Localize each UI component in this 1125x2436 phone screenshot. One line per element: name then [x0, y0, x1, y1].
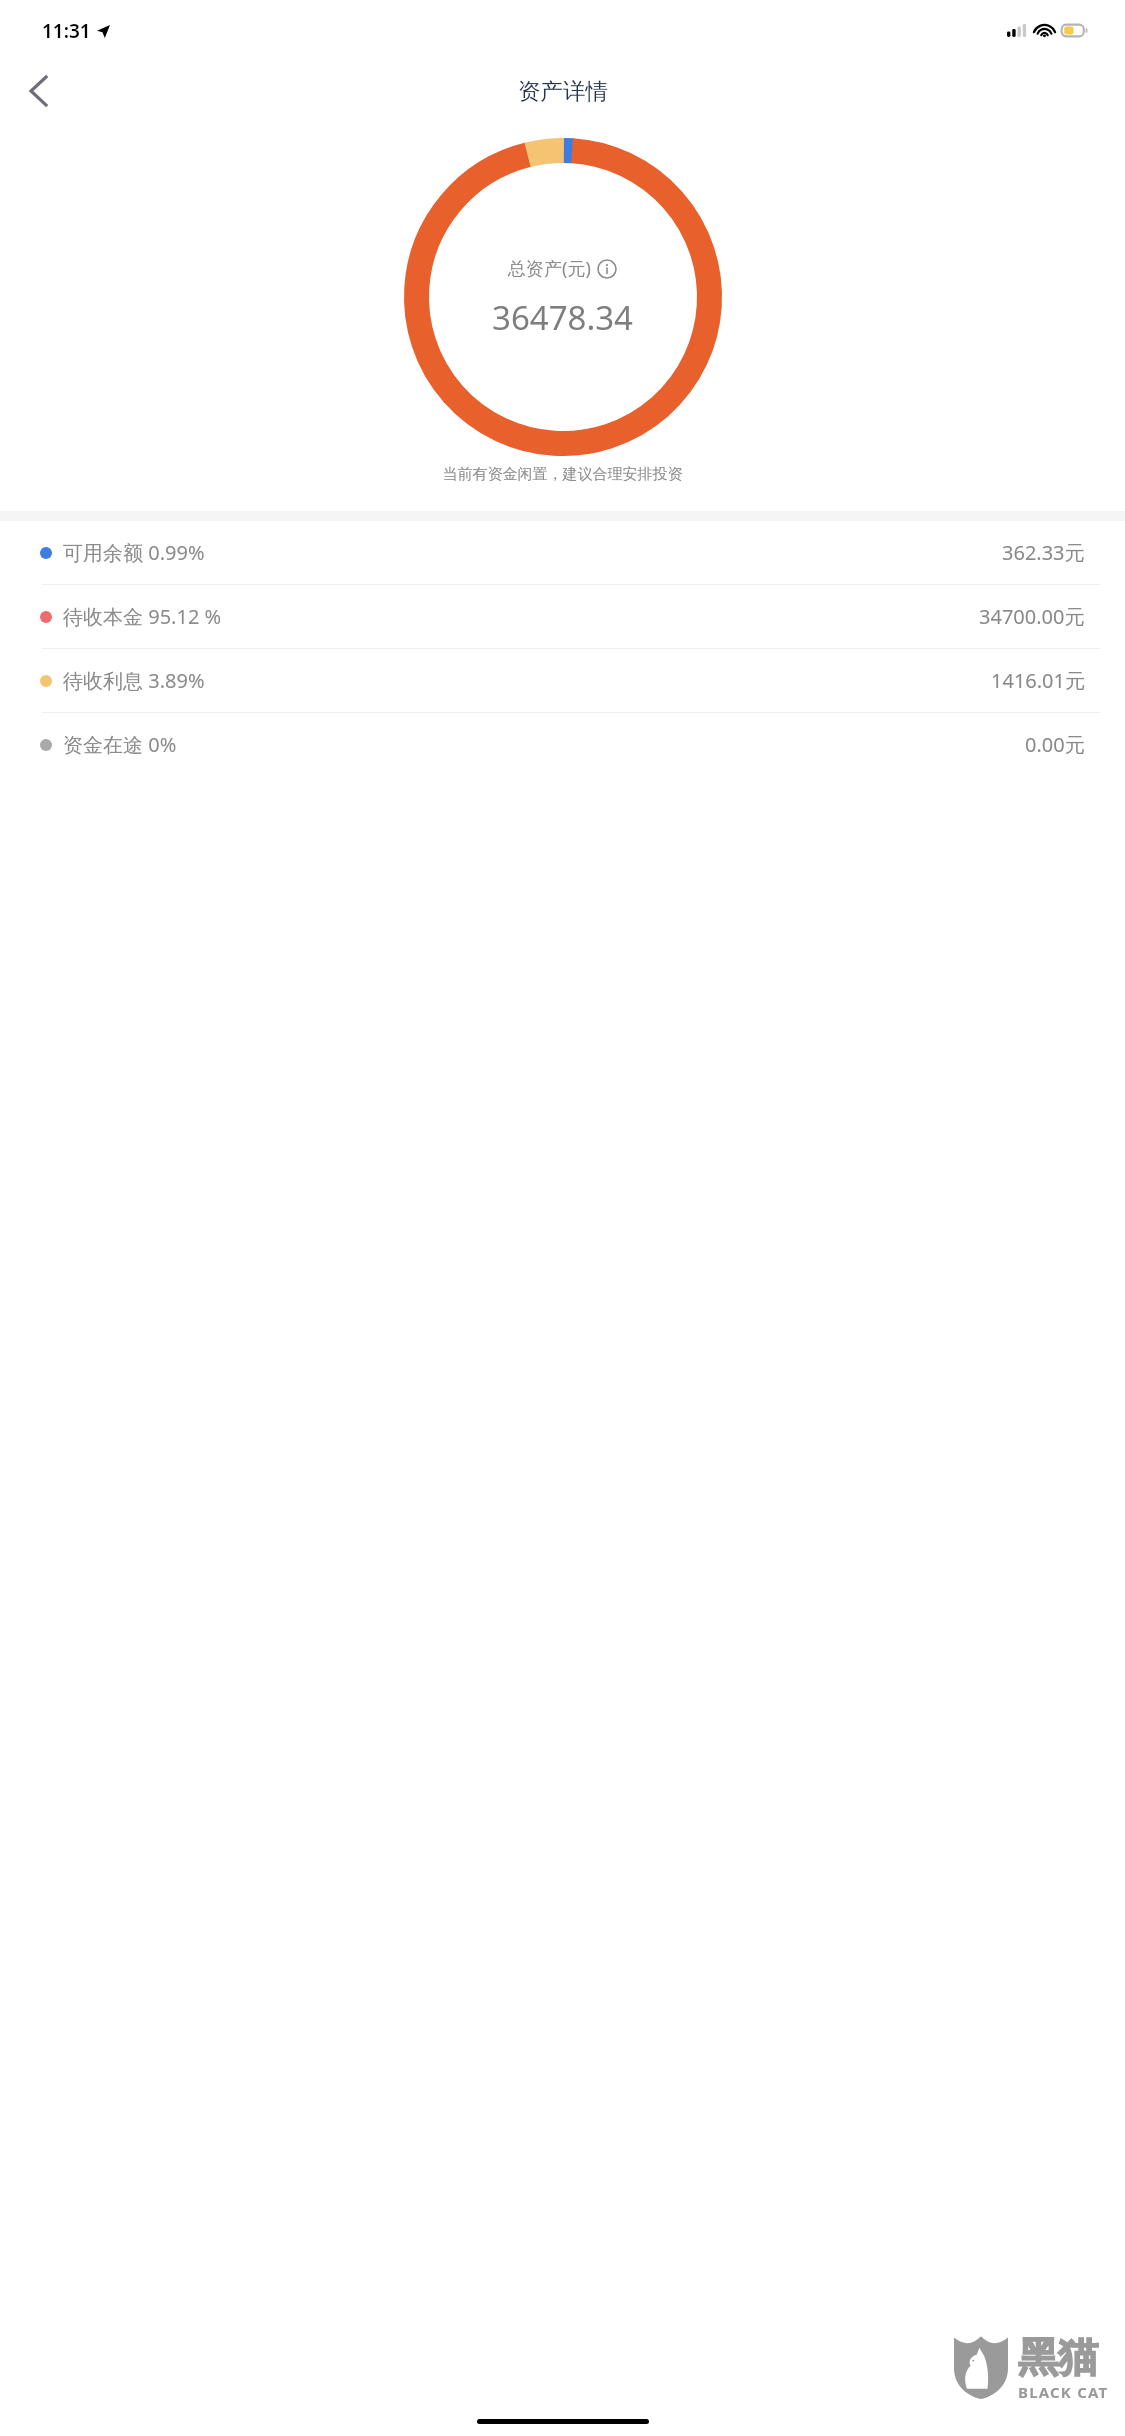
- staticText: BLACK CAT: [1018, 2382, 1109, 2402]
- button[interactable]: Back: [12, 65, 64, 117]
- staticText: 待收本金 95.12 %: [63, 603, 222, 630]
- button[interactable]: 待收利息 3.89%: [0, 649, 1125, 712]
- staticText: 0.00元: [1025, 731, 1085, 758]
- button[interactable]: 总资产(元): [504, 254, 621, 283]
- staticText: 可用余额 0.99%: [63, 539, 205, 566]
- staticText: 资金在途 0%: [63, 731, 177, 758]
- button[interactable]: 资金在途 0%: [0, 713, 1125, 776]
- button[interactable]: 可用余额 0.99%: [0, 521, 1125, 584]
- staticText: 总资产(元): [508, 256, 591, 281]
- staticText: 11:31: [42, 18, 91, 44]
- other: Info: [597, 259, 617, 279]
- staticText: 当前有资金闲置，建议合理安排投资: [0, 465, 1125, 484]
- staticText: 34700.00元: [979, 603, 1085, 630]
- staticText: 黑猫: [1018, 2332, 1098, 2382]
- button[interactable]: 待收本金 95.12 %: [0, 585, 1125, 648]
- staticText: 36478.34: [492, 295, 633, 340]
- staticText: 待收利息 3.89%: [63, 667, 205, 694]
- staticText: 362.33元: [1002, 539, 1085, 566]
- staticText: 资产详情: [518, 77, 608, 105]
- staticText: 1416.01元: [991, 667, 1085, 694]
